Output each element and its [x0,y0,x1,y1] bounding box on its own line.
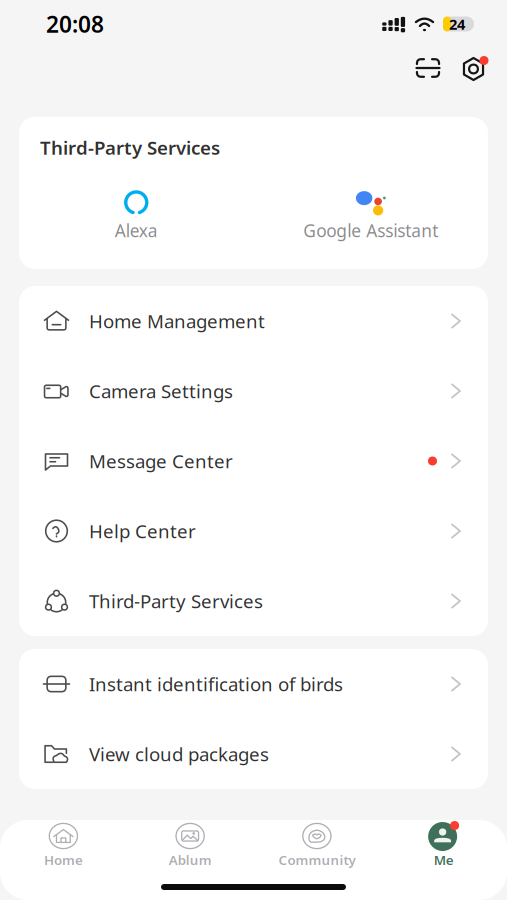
staticText: Third-Party Services [89,589,263,613]
button[interactable]: Instant identification of birds [19,649,488,719]
staticText: Google Assistant [303,219,438,242]
staticText: View cloud packages [89,742,269,766]
staticText: Camera Settings [89,379,233,403]
button[interactable]: Help Center [19,496,488,566]
staticText: Instant identification of birds [89,672,343,696]
button[interactable]: View cloud packages [19,719,488,789]
button[interactable]: Message Center [19,426,488,496]
staticText: 24 [449,14,465,34]
staticText: Ablum [169,851,212,869]
button[interactable]: Community [253,820,380,869]
button[interactable]: Me [380,820,507,869]
staticText: 20:08 [46,9,104,39]
button[interactable]: Home Management [19,286,488,356]
button[interactable]: Ablum [127,820,254,869]
button[interactable]: Settings [460,56,491,80]
staticText: Help Center [89,519,196,543]
staticText: Me [434,851,454,869]
button[interactable]: Home [0,820,127,869]
staticText: Home Management [89,309,265,333]
staticText: Community [278,851,355,869]
button[interactable]: Alexa [19,190,253,242]
button[interactable]: Third-Party Services [19,566,488,636]
button[interactable]: Scan [410,53,446,83]
staticText: Third-Party Services [40,135,220,160]
button[interactable]: Camera Settings [19,356,488,426]
staticText: Home [44,851,83,869]
button[interactable]: Google Assistant [253,190,488,242]
staticText: Message Center [89,449,233,473]
staticText: Alexa [115,219,158,242]
